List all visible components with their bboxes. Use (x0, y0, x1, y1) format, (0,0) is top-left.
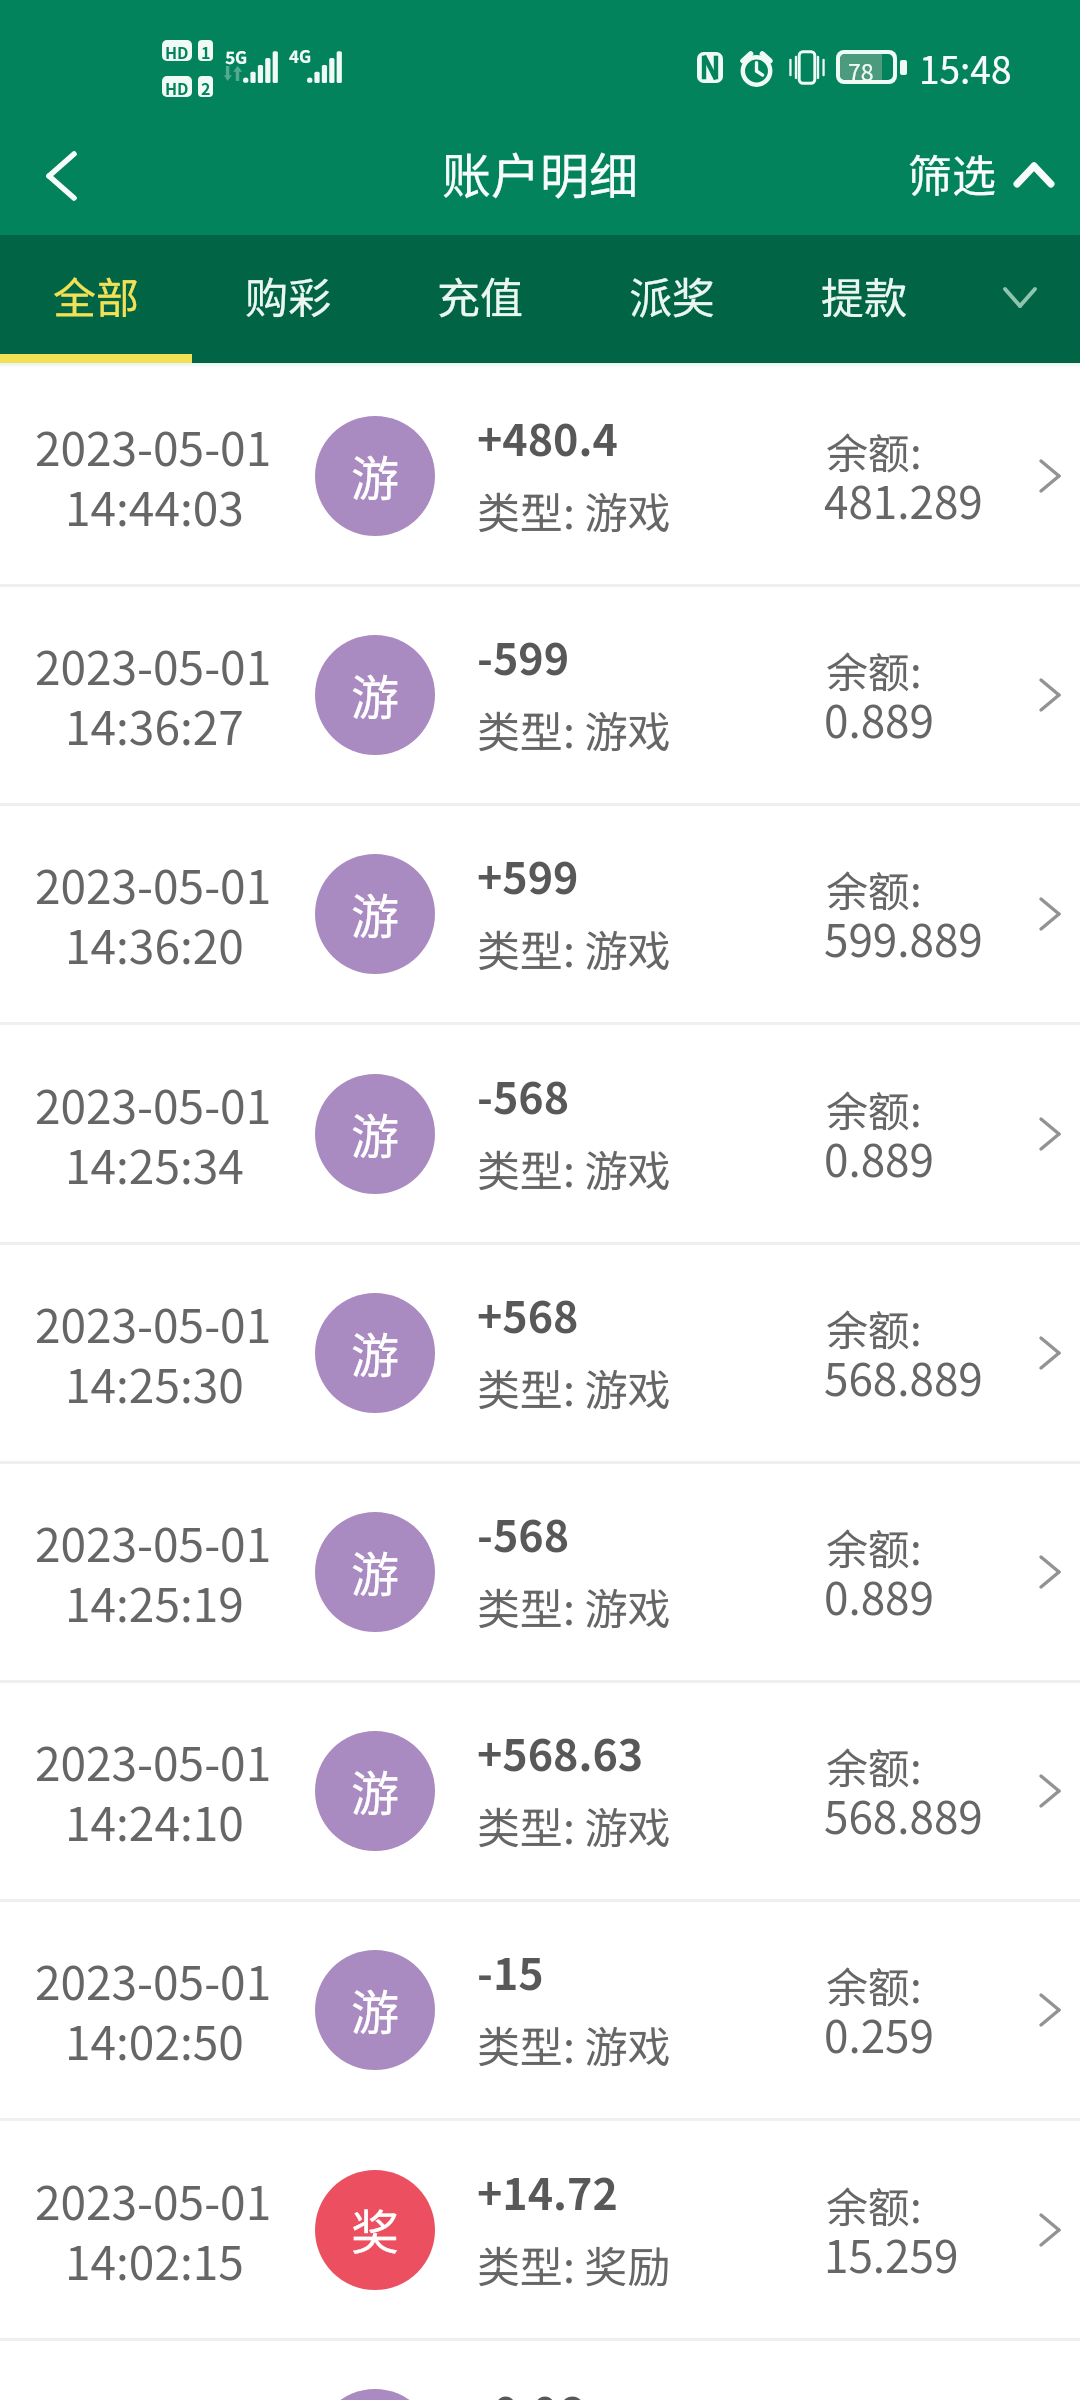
staticText: -15 (477, 1940, 544, 2002)
staticText: 类型: 游戏 (477, 2013, 671, 2075)
staticText: 2023-05-01 (35, 851, 272, 918)
button[interactable]: 提款 (768, 235, 960, 363)
staticText: 余额: (826, 1297, 922, 1358)
staticText: 类型: 游戏 (477, 1356, 671, 1418)
staticText: 15:48 (919, 41, 1012, 95)
staticText: 14:24:10 (65, 1788, 244, 1855)
staticText: 568.889 (824, 1783, 983, 1847)
staticText: 2023-05-01 (35, 413, 272, 480)
staticText: 14:02:50 (65, 2007, 244, 2074)
staticText: 游 (351, 1317, 400, 1387)
staticText: 游 (351, 659, 400, 729)
staticText: -568 (477, 1064, 570, 1126)
staticText: +14.72 (477, 2160, 618, 2222)
staticText: 账户明细 (442, 137, 639, 208)
staticText: +568.63 (477, 1721, 644, 1783)
button[interactable]: More categories (960, 235, 1080, 363)
staticText: -568 (477, 1502, 570, 1564)
button[interactable]: 2023-05-01 (0, 2339, 1080, 2400)
staticText: 2023-05-01 (35, 1071, 272, 1138)
staticText: 类型: 游戏 (477, 1794, 671, 1856)
staticText: 14:36:20 (65, 911, 244, 978)
staticText: 余额: (826, 1078, 922, 1139)
staticText: 481.289 (824, 468, 983, 532)
button[interactable]: 充值 (384, 235, 576, 363)
button[interactable]: 2023-05-01 (0, 2120, 1080, 2338)
staticText: 1 (201, 40, 211, 61)
button[interactable]: 派奖 (576, 235, 768, 363)
button[interactable]: 2023-05-01 (0, 804, 1080, 1022)
staticText: 充值 (437, 264, 523, 326)
button[interactable]: 购彩 (192, 235, 384, 363)
staticText: 余额: (826, 1516, 922, 1577)
staticText: 14:36:27 (65, 692, 244, 759)
staticText: 14:25:19 (65, 1569, 244, 1636)
staticText: 余额: (826, 420, 922, 481)
button[interactable]: Back (0, 116, 118, 235)
staticText: +480.4 (477, 406, 618, 468)
staticText: 2023-05-01 (35, 1728, 272, 1795)
staticText: -599 (477, 625, 570, 687)
staticText: HD (165, 40, 189, 61)
button[interactable]: 2023-05-01 (0, 1681, 1080, 1899)
staticText: 游 (351, 1755, 400, 1825)
button[interactable]: 2023-05-01 (0, 1462, 1080, 1680)
staticText: 奖 (351, 2194, 400, 2264)
staticText: 筛选 (908, 141, 996, 205)
staticText: +599 (477, 844, 579, 906)
staticText: 游 (351, 878, 400, 948)
staticText: 0.889 (824, 687, 934, 751)
staticText: 5G (225, 44, 248, 69)
button[interactable]: 2023-05-01 (0, 366, 1080, 584)
staticText: 余额: (826, 1954, 922, 2015)
staticText: 类型: 游戏 (477, 698, 671, 760)
staticText: HD (165, 76, 189, 97)
button[interactable]: 筛选 (908, 116, 1080, 235)
staticText: 类型: 奖励 (477, 2233, 671, 2295)
staticText: +568 (477, 1283, 579, 1345)
staticText: 游 (351, 1536, 400, 1606)
staticText: 类型: 游戏 (477, 1137, 671, 1199)
button[interactable]: 2023-05-01 (0, 1900, 1080, 2118)
staticText: 余额: (826, 2174, 922, 2235)
staticText: 14:02:15 (65, 2227, 244, 2294)
staticText: 568.889 (824, 1345, 983, 1409)
staticText: 提款 (821, 264, 907, 326)
staticText: 2023-05-01 (35, 1509, 272, 1576)
staticText: 游 (351, 440, 400, 510)
staticText: 类型: 游戏 (477, 1575, 671, 1637)
staticText: 2023-05-01 (35, 2167, 272, 2234)
staticText: 类型: 游戏 (477, 917, 671, 979)
staticText: 全部 (53, 264, 139, 326)
staticText: 余额: (826, 639, 922, 700)
button[interactable]: 全部 (0, 235, 192, 363)
staticText: 0.889 (824, 1564, 934, 1628)
button[interactable]: 2023-05-01 (0, 585, 1080, 803)
staticText: 2023-05-01 (35, 1290, 272, 1357)
staticText: 14:25:34 (65, 1131, 244, 1198)
staticText: 599.889 (824, 906, 983, 970)
staticText: 2023-05-01 (35, 632, 272, 699)
staticText: 2 (201, 76, 211, 97)
staticText: 4G (289, 43, 312, 68)
button[interactable]: 2023-05-01 (0, 1243, 1080, 1461)
staticText: -0.06 (477, 2379, 583, 2400)
staticText: 余额: (826, 858, 922, 919)
staticText: 2023-05-01 (35, 1947, 272, 2014)
staticText: 派奖 (629, 264, 715, 326)
staticText: 78 (848, 54, 874, 80)
staticText: 类型: 游戏 (477, 479, 671, 541)
staticText: 0.259 (824, 2002, 934, 2066)
staticText: 14:25:30 (65, 1350, 244, 1417)
staticText: 游 (351, 1974, 400, 2044)
staticText: 14:44:03 (65, 473, 244, 540)
staticText: 15.259 (824, 2222, 959, 2286)
button[interactable]: 2023-05-01 (0, 1024, 1080, 1242)
staticText: 游 (351, 1098, 400, 1168)
staticText: 0.889 (824, 1126, 934, 1190)
staticText: 购彩 (245, 264, 331, 326)
staticText: 余额: (826, 1735, 922, 1796)
